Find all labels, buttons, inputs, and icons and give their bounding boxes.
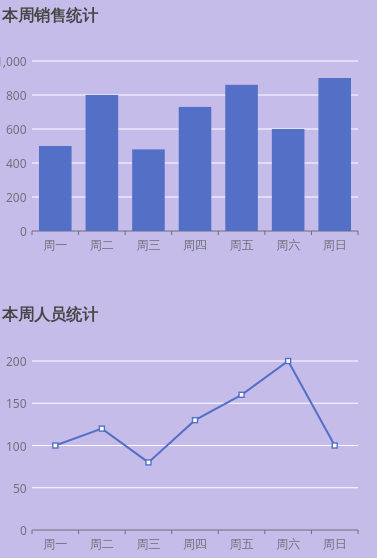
button[interactable]: [0, 0, 377, 558]
